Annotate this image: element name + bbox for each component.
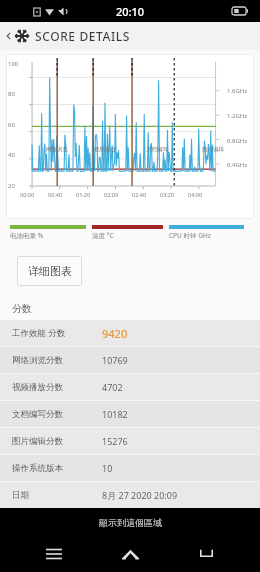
staticText: 4702 — [102, 381, 123, 393]
staticText: 20 — [8, 182, 15, 190]
button[interactable]: Home — [108, 536, 152, 572]
staticText: 9420 — [102, 326, 128, 341]
button[interactable]: 工作效能 分数 — [0, 320, 260, 346]
staticText: 00:00 — [20, 191, 48, 198]
staticText: 02:40 — [132, 191, 160, 198]
staticText: 8月 27 2020 20:09 — [102, 489, 178, 501]
staticText: 00:40 — [48, 191, 76, 198]
staticText: 0.4GHz — [227, 161, 248, 169]
staticText: 电池电量 % — [10, 231, 44, 240]
staticText: 文档编写 — [146, 146, 168, 153]
staticText: 分数 — [12, 302, 32, 315]
staticText: 操作系统版本 — [12, 463, 102, 474]
button[interactable]: 详细图表 — [17, 256, 82, 286]
staticText: 15276 — [102, 435, 128, 447]
staticText: 10 — [102, 462, 113, 474]
staticText: 网络浏览分数 — [12, 355, 102, 366]
button[interactable]: 文档编写分数 — [0, 401, 260, 427]
staticText: 视频播放 — [94, 146, 116, 153]
button[interactable]: 操作系统版本 — [0, 455, 260, 481]
staticText: CPU 时钟 GHz — [169, 231, 211, 240]
staticText: 网络浏览 — [46, 146, 68, 153]
button[interactable]: 网络浏览分数 — [0, 347, 260, 373]
staticText: 图片编辑分数 — [12, 436, 102, 447]
staticText: 顯示到這個區域 — [99, 517, 162, 528]
staticText: 温度 °C — [92, 231, 114, 240]
staticText: 04:00 — [188, 191, 216, 198]
other: Back — [4, 31, 14, 41]
button[interactable]: Back — [184, 536, 228, 572]
staticText: 1.2GHz — [227, 112, 248, 120]
staticText: 图片编辑 — [202, 146, 224, 153]
button[interactable]: Back — [0, 22, 260, 50]
button[interactable]: 视频播放分数 — [0, 374, 260, 400]
staticText: 40 — [8, 151, 15, 159]
staticText: 0.8GHz — [227, 137, 248, 145]
staticText: 80 — [8, 90, 15, 98]
staticText: 日期 — [12, 490, 102, 501]
staticText: 10769 — [102, 354, 128, 366]
button[interactable]: 图片编辑分数 — [0, 428, 260, 454]
staticText: 10182 — [102, 408, 128, 420]
button[interactable]: Recent apps — [32, 536, 76, 572]
staticText: 工作效能 分数 — [12, 327, 102, 339]
staticText: 03:20 — [160, 191, 188, 198]
staticText: 文档编写分数 — [12, 409, 102, 420]
staticText: 02:00 — [104, 191, 132, 198]
staticText: 20:10 — [116, 4, 145, 19]
staticText: SCORE DETAILS — [35, 28, 131, 44]
staticText: 1.6GHz — [227, 87, 248, 95]
button[interactable]: 日期 — [0, 482, 260, 508]
staticText: 01:20 — [76, 191, 104, 198]
staticText: 详细图表 — [28, 264, 72, 278]
staticText: 60 — [8, 121, 15, 129]
staticText: 视频播放分数 — [12, 382, 102, 393]
staticText: 100 — [8, 60, 19, 68]
